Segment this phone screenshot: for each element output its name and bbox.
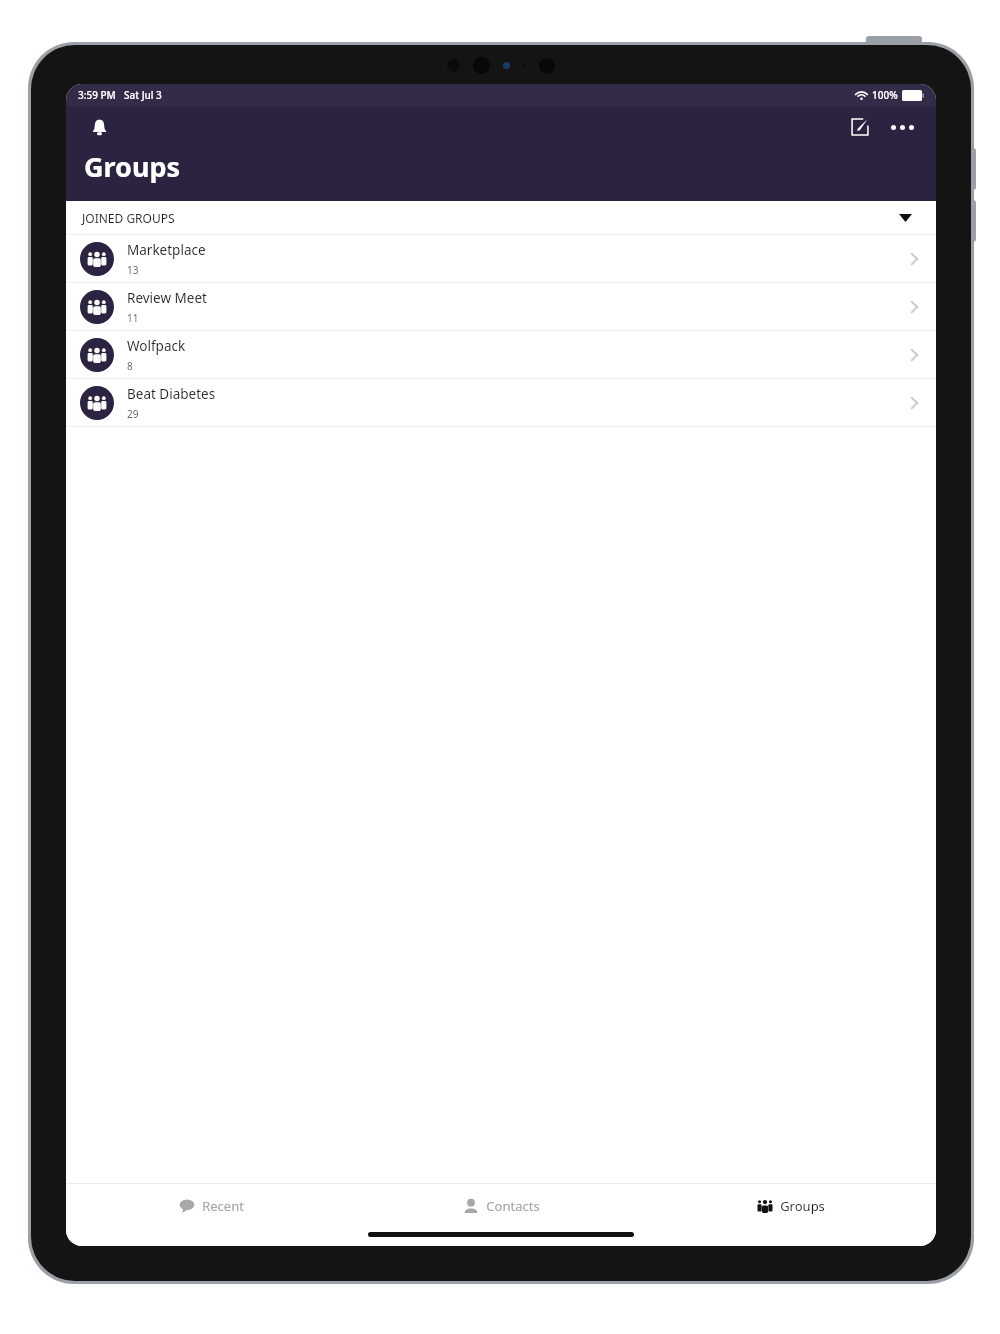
button[interactable]: Contacts [356,1184,646,1228]
staticText: Wolfpack [127,337,186,355]
button[interactable]: Marketplace [66,235,936,283]
staticText: 3:59 PM [78,88,116,102]
button[interactable]: Recent [66,1184,356,1228]
button[interactable]: JOINED GROUPS [66,201,936,235]
staticText: Groups [84,148,181,185]
staticText: Beat Diabetes [127,385,216,403]
button[interactable]: Beat Diabetes [66,379,936,427]
button[interactable]: More options [884,109,920,145]
staticText: Recent [202,1197,244,1215]
staticText: Marketplace [127,241,206,259]
button[interactable]: Notifications [82,110,116,144]
button[interactable]: Review Meet [66,283,936,331]
staticText: 11 [127,311,139,325]
staticText: 29 [127,407,139,421]
button[interactable]: Groups [646,1184,936,1228]
staticText: Review Meet [127,289,207,307]
staticText: Contacts [486,1197,540,1215]
staticText: 8 [127,359,133,373]
button[interactable]: Compose new message [842,109,878,145]
staticText: 13 [127,263,139,277]
staticText: Groups [780,1197,825,1215]
staticText: Sat Jul 3 [124,88,162,102]
staticText: JOINED GROUPS [82,210,175,226]
staticText: 100% [872,88,898,102]
button[interactable]: Wolfpack [66,331,936,379]
